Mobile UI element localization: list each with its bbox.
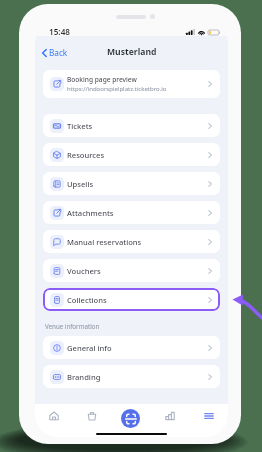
staticText: Venue information xyxy=(45,322,100,330)
button[interactable]: Collections xyxy=(43,288,220,311)
button[interactable]: Orders xyxy=(73,404,111,428)
button[interactable]: Menu xyxy=(189,404,228,428)
staticText: Manual reservations xyxy=(67,237,208,247)
button[interactable]: Booking page preview xyxy=(43,70,220,98)
button[interactable]: Upsells xyxy=(43,172,220,195)
button[interactable]: Home xyxy=(35,404,73,428)
staticText: Upsells xyxy=(67,179,208,189)
button[interactable]: Back xyxy=(40,44,70,61)
staticText: Branding xyxy=(67,372,208,382)
staticText: Vouchers xyxy=(67,266,208,276)
button[interactable]: Branding xyxy=(43,365,220,388)
button[interactable]: Resources xyxy=(43,143,220,166)
staticText: Back xyxy=(49,47,68,58)
staticText: Resources xyxy=(67,150,208,160)
staticText: Collections xyxy=(67,295,208,305)
staticText: 15:48 xyxy=(49,26,70,37)
button[interactable]: General info xyxy=(43,336,220,359)
staticText: Tickets xyxy=(67,121,208,131)
button[interactable]: Scan ticket xyxy=(121,409,140,428)
button[interactable]: Statistics xyxy=(150,404,189,428)
button[interactable]: Manual reservations xyxy=(43,230,220,253)
staticText: General info xyxy=(67,343,208,353)
button[interactable]: Vouchers xyxy=(43,259,220,282)
staticText: Musterland xyxy=(107,46,157,58)
button[interactable]: Attachments xyxy=(43,201,220,224)
staticText: Booking page preview xyxy=(67,75,137,84)
staticText: Attachments xyxy=(67,208,208,218)
staticText: https://indoorspielplatz.ticketbro.io xyxy=(67,85,167,93)
button[interactable]: Tickets xyxy=(43,114,220,137)
